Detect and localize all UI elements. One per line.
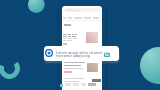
staticText: Go: [105, 53, 109, 57]
button[interactable]: Go: [104, 53, 110, 57]
staticText: nsectetur adipiscing: [56, 53, 91, 58]
staticText: Lorem ipsum dolor sit amet, co: [56, 50, 109, 55]
button[interactable]: Assistant: [44, 46, 119, 61]
button[interactable]: Assistant: [45, 49, 53, 57]
button[interactable]: [64, 8, 101, 12]
